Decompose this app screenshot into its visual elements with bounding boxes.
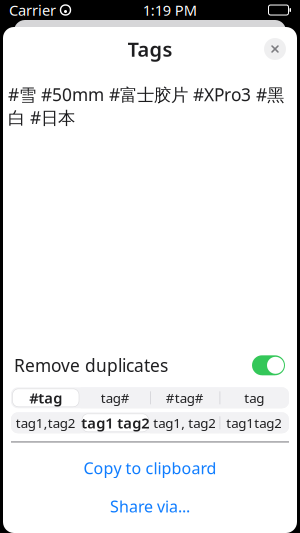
button[interactable]: #tag# — [150, 387, 219, 408]
staticText: #tag — [29, 388, 62, 408]
staticText: tag1,tag2 — [16, 414, 76, 432]
button[interactable]: tag1 tag2 — [80, 412, 150, 433]
button[interactable]: tag — [219, 387, 289, 408]
staticText: Carrier — [9, 0, 56, 20]
button[interactable]: tag1,tag2 — [11, 412, 80, 433]
staticText: tag — [244, 389, 264, 407]
staticText: #tag# — [166, 389, 204, 407]
staticText: Remove duplicates — [14, 354, 168, 377]
button[interactable]: Copy to clipboard — [11, 449, 289, 487]
staticText: Tags — [127, 36, 172, 62]
staticText: tag1, tag2 — [153, 414, 216, 432]
button[interactable]: Share via... — [11, 488, 289, 525]
staticText: Copy to clipboard — [83, 457, 216, 479]
staticText: 1:19 PM — [143, 0, 197, 20]
staticText: tag1 tag2 — [81, 413, 149, 433]
button[interactable]: #tag — [11, 387, 80, 408]
staticText: Share via... — [110, 496, 190, 517]
button[interactable]: tag1, tag2 — [150, 412, 219, 433]
button[interactable]: tag1tag2 — [219, 412, 289, 433]
button[interactable]: tag# — [80, 387, 150, 408]
button[interactable]: Close — [260, 34, 290, 64]
staticText: tag# — [101, 389, 130, 407]
staticText: tag1tag2 — [226, 414, 282, 432]
button[interactable]: Remove duplicates toggle — [251, 353, 286, 377]
staticText: #雪 #50mm #富士胶片 #XPro3 #黑白 #日本 — [8, 83, 284, 129]
